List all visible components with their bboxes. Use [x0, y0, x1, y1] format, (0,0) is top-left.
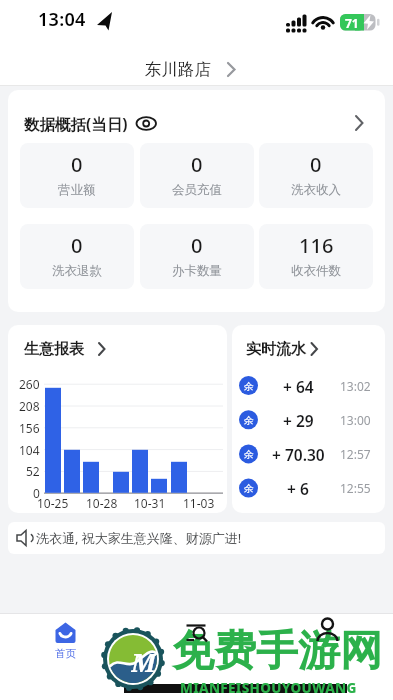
staticText: 12:57: [340, 446, 371, 462]
staticText: 洗衣通, 祝大家生意兴隆、财源广进!: [36, 529, 242, 547]
staticText: 0: [191, 151, 203, 178]
staticText: M: [131, 644, 156, 678]
staticText: 办卡数量: [172, 263, 222, 279]
staticText: 免费手游网: [172, 625, 382, 678]
staticText: 洗衣退款: [52, 263, 102, 279]
button[interactable]: [153, 615, 241, 665]
button[interactable]: [140, 224, 254, 289]
button[interactable]: [22, 615, 110, 665]
staticText: 余: [244, 482, 254, 495]
staticText: 营业额: [58, 182, 96, 198]
staticText: 余: [244, 414, 254, 427]
staticText: 10-25: [37, 495, 69, 511]
staticText: 11-03: [183, 495, 215, 511]
button[interactable]: [8, 325, 227, 513]
staticText: 0: [310, 151, 322, 178]
staticText: 156: [19, 420, 40, 436]
staticText: 0: [191, 232, 203, 259]
staticText: 71: [345, 15, 359, 31]
staticText: + 70.30: [272, 444, 325, 465]
button[interactable]: [140, 143, 254, 208]
button[interactable]: [259, 224, 373, 289]
staticText: MIANFEISHOUYOUWANG: [180, 679, 357, 697]
staticText: 洗衣收入: [291, 182, 341, 198]
staticText: + 64: [283, 376, 314, 397]
staticText: 116: [299, 232, 334, 259]
button[interactable]: [234, 472, 383, 504]
staticText: 104: [19, 442, 40, 458]
staticText: + 6: [287, 478, 309, 499]
staticText: 10-28: [86, 495, 118, 511]
staticText: 东川路店: [145, 59, 211, 80]
staticText: 0: [71, 151, 83, 178]
staticText: 收衣件数: [291, 263, 341, 279]
staticText: 12:55: [340, 480, 371, 496]
button[interactable]: [234, 438, 383, 470]
button[interactable]: [284, 615, 372, 665]
staticText: 13:04: [38, 7, 86, 31]
staticText: 余: [244, 380, 254, 393]
staticText: 52: [26, 463, 40, 479]
button[interactable]: [259, 143, 373, 208]
button[interactable]: [234, 370, 383, 402]
staticText: 实时流水: [246, 340, 306, 359]
button[interactable]: 东川路店: [145, 55, 245, 83]
staticText: 会员充值: [172, 182, 222, 198]
staticText: 生意报表: [24, 340, 84, 359]
staticText: 10-31: [134, 495, 166, 511]
button[interactable]: [8, 522, 385, 554]
button[interactable]: [20, 143, 134, 208]
staticText: 13:00: [340, 412, 371, 428]
staticText: 数据概括(当日): [24, 113, 128, 134]
staticText: 208: [19, 398, 40, 414]
staticText: + 29: [283, 410, 314, 431]
staticText: 0: [33, 485, 40, 501]
button[interactable]: [234, 404, 383, 436]
staticText: 260: [19, 376, 40, 392]
button[interactable]: [20, 224, 134, 289]
staticText: 余: [244, 448, 254, 461]
staticText: 首页: [55, 647, 76, 660]
staticText: 0: [71, 232, 83, 259]
staticText: 13:02: [340, 378, 371, 394]
